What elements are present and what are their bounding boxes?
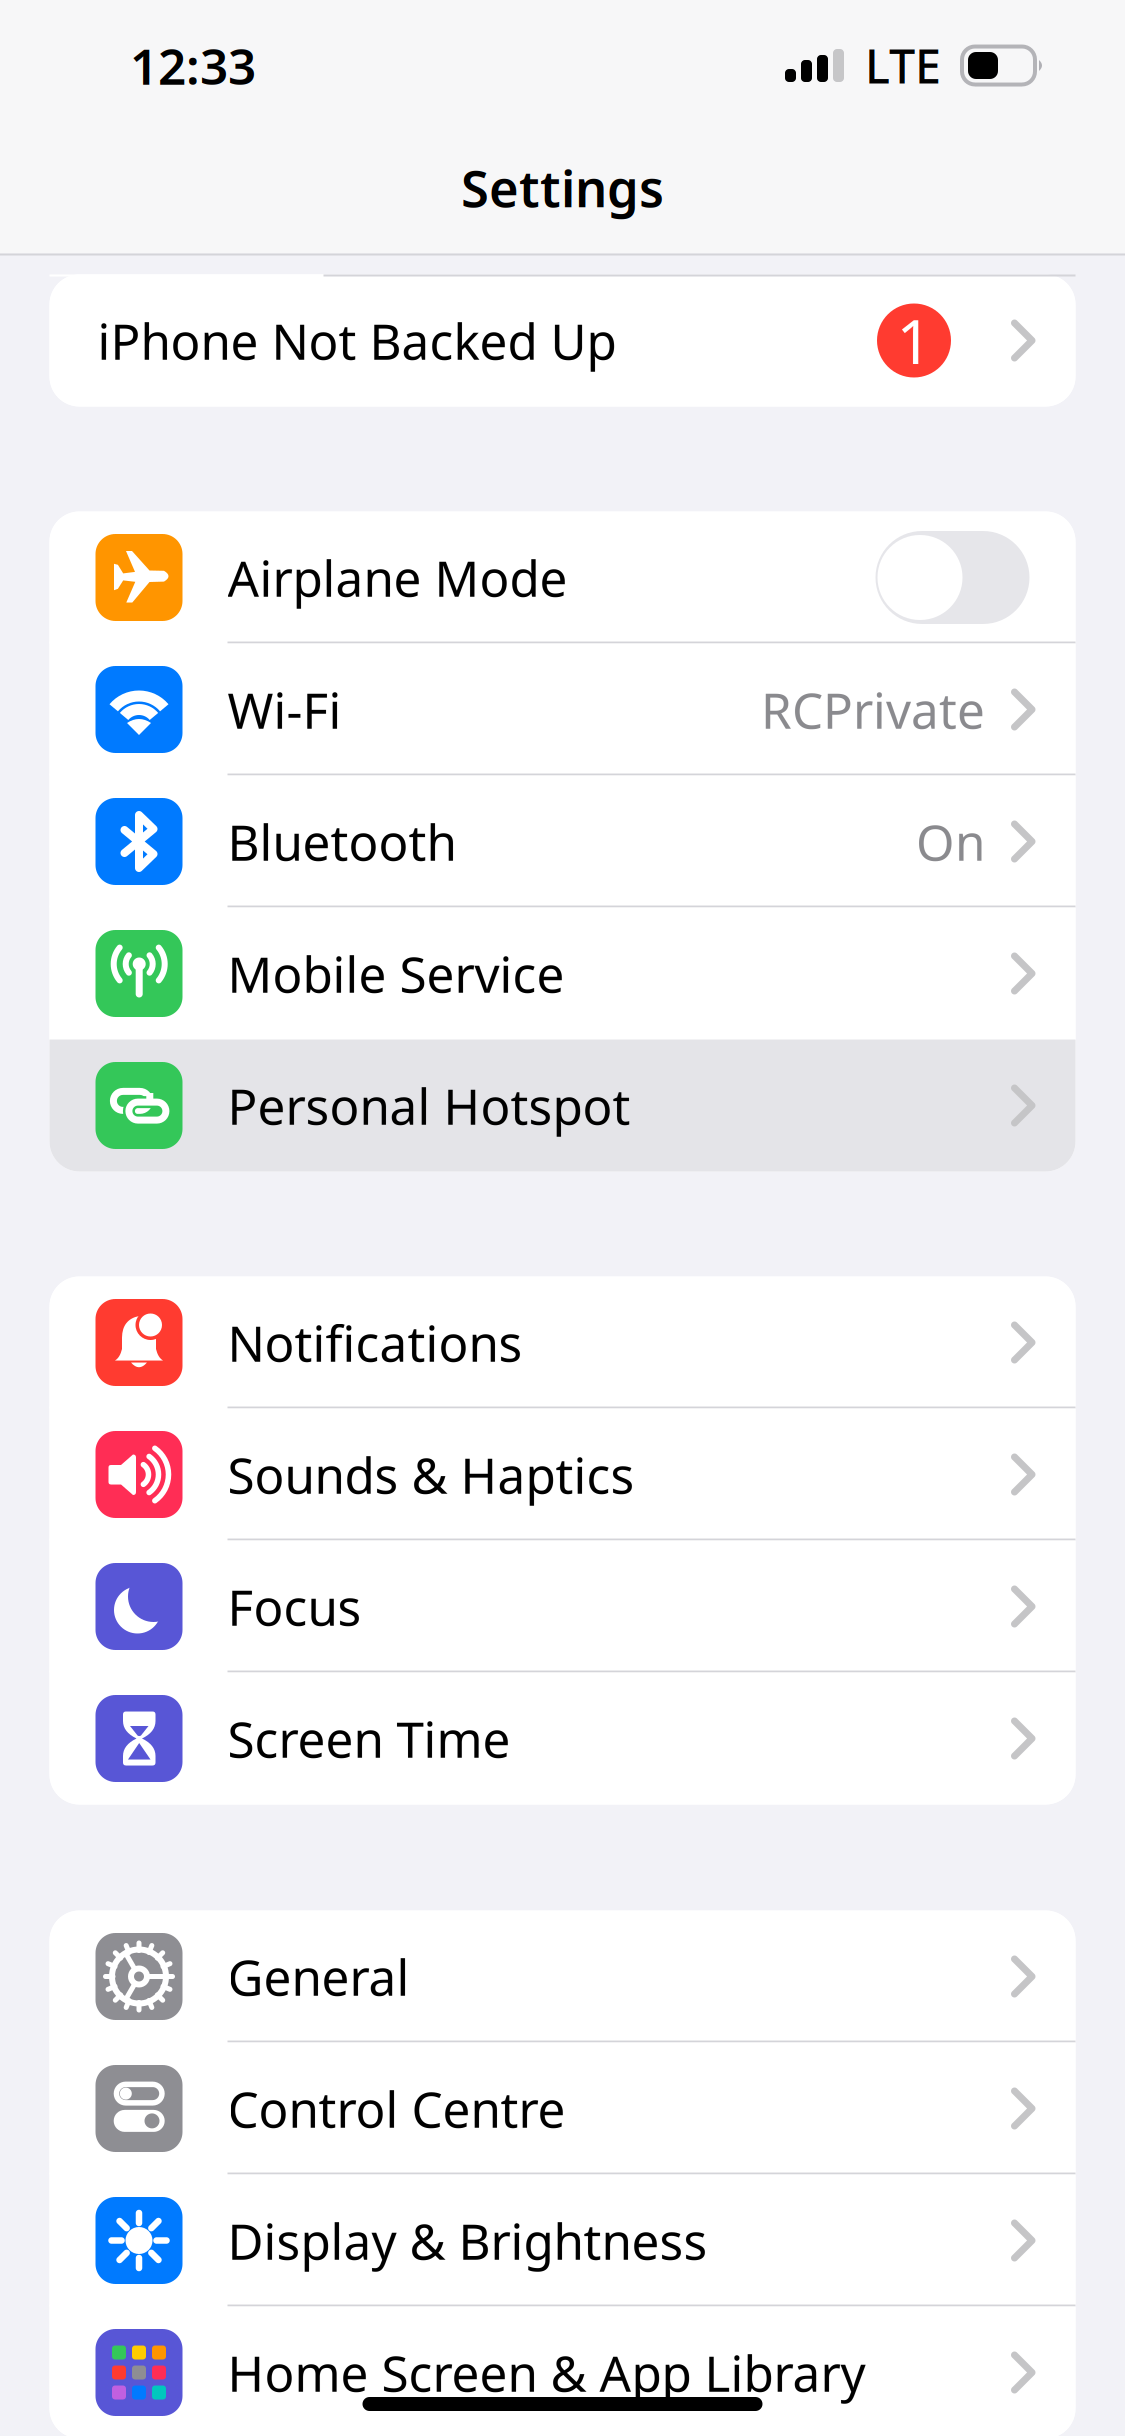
staticText: RCPrivate (761, 677, 985, 742)
staticText: On (916, 809, 985, 874)
staticText: Airplane Mode (227, 545, 567, 610)
staticText: Control Centre (227, 2076, 565, 2141)
button[interactable]: Control Centre (49, 2042, 1075, 2174)
button[interactable]: Airplane Mode (49, 511, 1075, 643)
staticText: iPhone Not Backed Up (97, 308, 616, 373)
button[interactable]: Screen Time (49, 1672, 1075, 1804)
staticText: Mobile Service (227, 941, 564, 1006)
button[interactable]: Focus (49, 1540, 1075, 1672)
staticText: Wi-Fi (227, 677, 341, 742)
button[interactable]: Home Screen & App Library (49, 2306, 1075, 2436)
staticText: Focus (227, 1574, 361, 1639)
staticText: 1 (896, 300, 931, 381)
button[interactable]: Mobile Service (49, 907, 1075, 1039)
staticText: Home Screen & App Library (227, 2340, 865, 2405)
staticText: 12:33 (130, 33, 256, 98)
staticText: Personal Hotspot (227, 1073, 630, 1138)
staticText: Screen Time (227, 1706, 510, 1771)
button[interactable]: Sounds & Haptics (49, 1408, 1075, 1540)
staticText: Settings (461, 154, 664, 221)
staticText: LTE (865, 34, 941, 96)
button[interactable]: General (49, 1910, 1075, 2042)
staticText: Sounds & Haptics (227, 1442, 634, 1507)
button[interactable]: Notifications (49, 1276, 1075, 1408)
button[interactable]: iPhone Not Backed Up (49, 274, 1075, 406)
button[interactable]: Bluetooth (49, 775, 1075, 907)
button[interactable]: Personal Hotspot (49, 1039, 1075, 1171)
staticText: Display & Brightness (227, 2208, 707, 2273)
staticText: Bluetooth (227, 809, 456, 874)
staticText: Notifications (227, 1310, 522, 1375)
staticText: General (227, 1944, 409, 2009)
button[interactable]: Display & Brightness (49, 2174, 1075, 2306)
button[interactable]: Wi-Fi (49, 643, 1075, 775)
